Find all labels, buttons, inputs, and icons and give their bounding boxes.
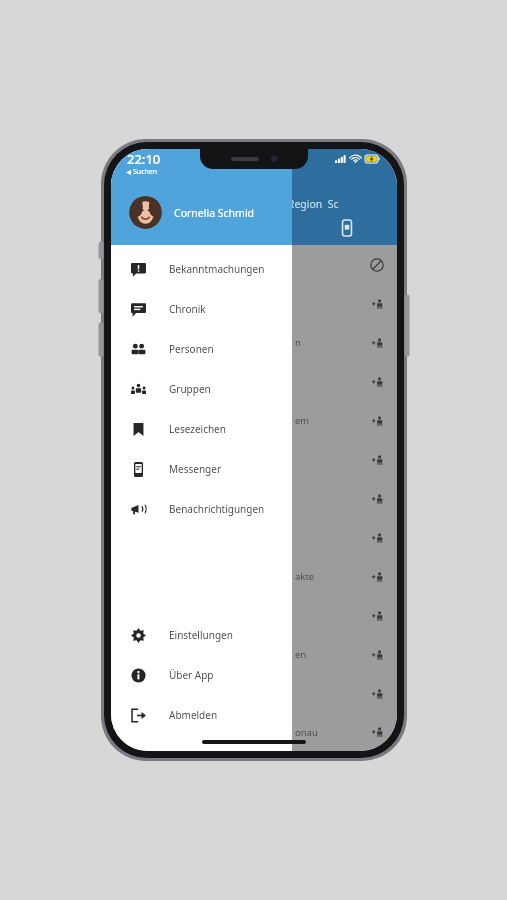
button[interactable]: Personen <box>111 329 292 369</box>
button[interactable] <box>111 362 397 401</box>
staticText: akte <box>295 570 315 583</box>
staticText: Cornelia Schmid <box>174 206 255 220</box>
button[interactable]: Einstellungen <box>111 615 292 655</box>
button[interactable] <box>111 674 397 713</box>
button[interactable]: Benachrichtigungen <box>111 489 292 529</box>
staticText: en <box>295 648 307 661</box>
staticText: 22:10 <box>127 150 161 168</box>
staticText: n <box>295 336 301 349</box>
staticText: Chronik <box>169 302 206 316</box>
staticText: Einstellungen <box>169 628 233 642</box>
button[interactable]: em <box>111 401 397 440</box>
button[interactable] <box>111 518 397 557</box>
staticText: Über App <box>169 668 214 682</box>
button[interactable]: en <box>111 635 397 674</box>
button[interactable]: Bekanntmachungen <box>111 249 292 289</box>
staticText: onau <box>295 726 318 739</box>
button[interactable]: n <box>111 323 397 362</box>
staticText: Messenger <box>169 462 222 476</box>
staticText: Lesezeichen <box>169 422 226 436</box>
button[interactable]: Messenger <box>111 449 292 489</box>
staticText: Personen <box>169 342 214 356</box>
staticText: Net - Smart Region Sc <box>229 197 339 211</box>
button[interactable] <box>111 284 397 323</box>
button[interactable]: Abmelden <box>111 695 292 735</box>
staticText: Gruppen <box>169 382 211 396</box>
button[interactable] <box>111 440 397 479</box>
button[interactable]: Device <box>339 220 355 236</box>
staticText: Abmelden <box>169 708 218 722</box>
button[interactable]: Gruppen <box>111 369 292 409</box>
button[interactable]: Chronik <box>111 289 292 329</box>
staticText: Suchen <box>133 167 158 177</box>
button[interactable]: Lesezeichen <box>111 409 292 449</box>
button[interactable]: onau <box>111 713 397 751</box>
button[interactable] <box>111 479 397 518</box>
button[interactable]: Über App <box>111 655 292 695</box>
button[interactable] <box>111 596 397 635</box>
button[interactable]: Cornelia Schmid <box>129 196 255 229</box>
button[interactable]: akte <box>111 557 397 596</box>
staticText: Benachrichtigungen <box>169 502 265 516</box>
staticText: Bekanntmachungen <box>169 262 265 276</box>
staticText: em <box>295 414 310 427</box>
button[interactable] <box>111 245 397 284</box>
